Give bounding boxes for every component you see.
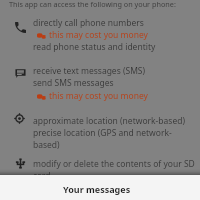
staticText: this may cost you money bbox=[49, 90, 148, 102]
other: Location bbox=[14, 113, 25, 124]
staticText: receive text messages (SMS) bbox=[33, 65, 197, 77]
staticText: precise location (GPS and network-based) bbox=[33, 127, 197, 151]
staticText: read phone status and identity bbox=[33, 41, 197, 53]
staticText: directly call phone numbers bbox=[33, 17, 197, 29]
staticText: Your messages bbox=[63, 183, 131, 195]
other: Storage bbox=[15, 158, 26, 169]
staticText: this may cost you money bbox=[49, 29, 148, 41]
staticText: approximate location (network-based) bbox=[33, 115, 197, 127]
staticText: send SMS messages bbox=[33, 77, 197, 89]
other: Phone bbox=[15, 22, 26, 33]
other: Messages bbox=[15, 67, 26, 78]
button[interactable]: Your messages bbox=[0, 175, 200, 200]
staticText: modify or delete the contents of your SD… bbox=[33, 158, 197, 182]
staticText: This app can access the following on you… bbox=[9, 0, 176, 9]
